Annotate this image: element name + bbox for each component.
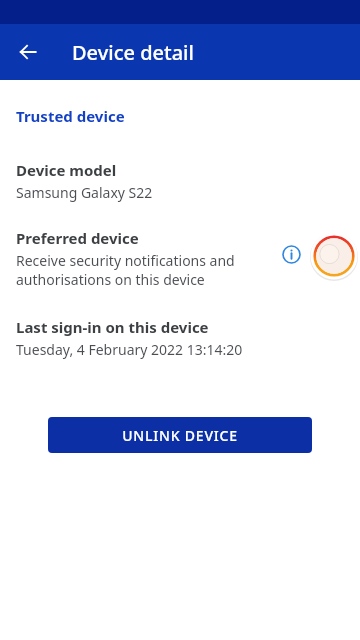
staticText: Last sign-in on this device — [16, 317, 209, 337]
staticText: Receive security notifications and autho… — [16, 251, 235, 289]
staticText: Preferred device — [16, 228, 139, 248]
button[interactable]: Toggle preferred device — [308, 230, 360, 282]
staticText: Samsung Galaxy S22 — [16, 183, 153, 202]
staticText: Device model — [16, 160, 117, 180]
button[interactable]: Back — [12, 36, 44, 68]
staticText: UNLINK DEVICE — [122, 426, 238, 445]
staticText: Tuesday, 4 February 2022 13:14:20 — [16, 340, 243, 359]
button[interactable]: Information — [278, 241, 304, 267]
staticText: Device detail — [72, 39, 194, 66]
staticText: Trusted device — [16, 106, 125, 126]
button[interactable]: Preferred device — [0, 228, 360, 289]
button[interactable]: UNLINK DEVICE — [48, 417, 312, 453]
